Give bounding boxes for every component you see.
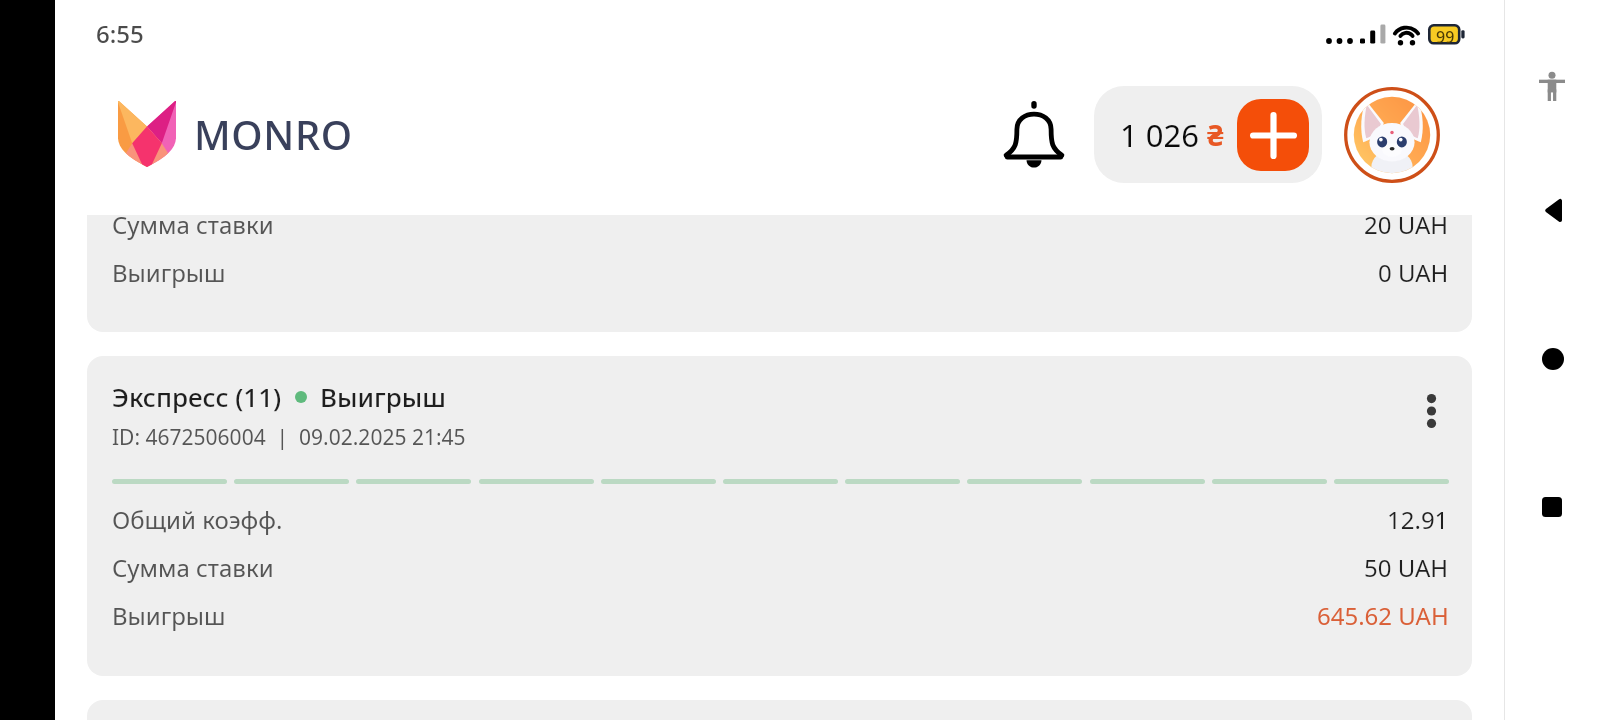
button[interactable]: MONRO xyxy=(118,101,353,167)
button[interactable]: Deposit xyxy=(1237,99,1309,171)
staticText: 6:55 xyxy=(96,17,144,50)
button[interactable]: Profile xyxy=(1344,87,1440,183)
staticText: Выигрыш xyxy=(112,256,226,289)
staticText: Экспресс (11) xyxy=(112,379,282,414)
button[interactable]: Notifications xyxy=(998,100,1070,172)
staticText: ₴ xyxy=(1207,115,1224,154)
button[interactable]: Recents xyxy=(1524,479,1580,535)
button[interactable]: Back xyxy=(1526,182,1582,238)
staticText: Выигрыш xyxy=(112,599,226,632)
button[interactable]: Accessibility xyxy=(1524,58,1580,114)
staticText: Общий коэфф. xyxy=(112,503,283,536)
staticText: 1 026 xyxy=(1120,114,1199,156)
staticText: 20 UAH xyxy=(1364,215,1449,241)
staticText: Сумма ставки xyxy=(112,551,274,584)
staticText: MONRO xyxy=(194,107,353,161)
staticText: 99 xyxy=(1436,26,1455,48)
staticText: Выигрыш xyxy=(320,379,446,414)
button[interactable]: 1 026 xyxy=(1094,86,1322,183)
button[interactable]: Сумма ставки xyxy=(87,215,1472,332)
staticText: 0 UAH xyxy=(1378,256,1449,289)
staticText: 645.62 UAH xyxy=(1317,599,1449,632)
staticText: Сумма ставки xyxy=(112,215,274,241)
button[interactable]: Home xyxy=(1525,331,1581,387)
button[interactable]: Экспресс (11) xyxy=(87,356,1472,676)
staticText: 50 UAH xyxy=(1364,551,1449,584)
staticText: 12.91 xyxy=(1387,503,1449,536)
staticText: ID: 4672506004 | 09.02.2025 21:45 xyxy=(112,423,466,452)
button[interactable]: More options xyxy=(1403,383,1459,439)
